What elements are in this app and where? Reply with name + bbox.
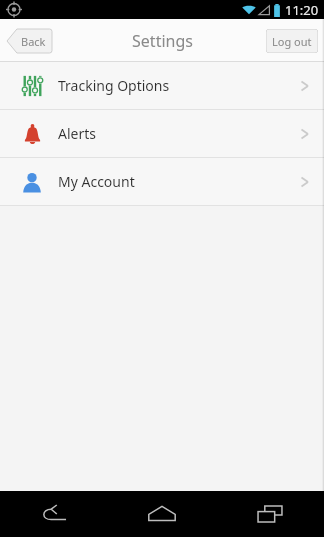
staticText: Back [21,34,46,49]
button[interactable]: My Account [0,158,324,205]
button[interactable]: Log out [266,29,318,53]
staticText: Tracking Options [58,76,170,95]
button[interactable]: Alerts [0,110,324,157]
staticText: 11:20 [285,1,319,19]
button[interactable]: Tracking Options [0,62,324,109]
button[interactable]: Recent apps [238,491,302,537]
button[interactable]: Back [7,29,52,53]
button[interactable]: Back [22,491,86,537]
button[interactable]: Home [130,491,194,537]
staticText: My Account [58,172,135,191]
staticText: Alerts [58,124,96,143]
staticText: Log out [272,34,312,49]
staticText: Settings [132,30,193,52]
